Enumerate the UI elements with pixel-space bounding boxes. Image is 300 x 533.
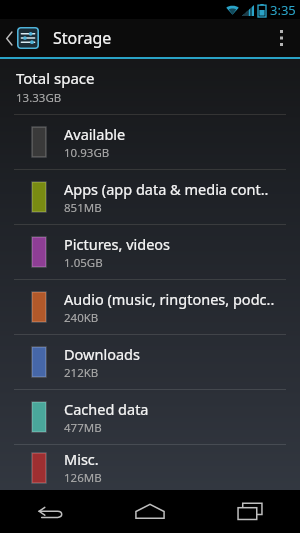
staticText: 212KB <box>64 365 99 381</box>
staticText: Total space <box>16 68 95 88</box>
staticText: Available <box>64 124 126 144</box>
staticText: 477MB <box>64 420 102 436</box>
staticText: 240KB <box>64 310 99 326</box>
staticText: Cached data <box>64 399 149 419</box>
staticText: 13.33GB <box>16 90 62 106</box>
button[interactable]: Apps (app data & media cont.. <box>0 170 300 224</box>
staticText: Pictures, videos <box>64 234 171 254</box>
button[interactable]: Recent apps <box>200 490 300 533</box>
staticText: Storage <box>53 27 112 49</box>
staticText: 1.05GB <box>64 255 103 271</box>
staticText: Apps (app data & media cont.. <box>64 179 269 199</box>
staticText: Downloads <box>64 344 140 364</box>
staticText: 851MB <box>64 200 102 216</box>
staticText: Audio (music, ringtones, podc.. <box>64 289 275 309</box>
button[interactable]: Back <box>0 490 100 533</box>
staticText: 3:35 <box>270 1 296 19</box>
button[interactable]: More options <box>262 19 300 57</box>
button[interactable]: Home <box>100 490 200 533</box>
button[interactable]: Navigate up <box>0 19 45 57</box>
staticText: 126MB <box>64 470 102 486</box>
button[interactable]: Downloads <box>0 335 300 389</box>
staticText: 10.93GB <box>64 145 110 161</box>
staticText: Misc. <box>64 449 99 469</box>
button[interactable]: Pictures, videos <box>0 225 300 279</box>
button[interactable]: Cached data <box>0 390 300 444</box>
button[interactable]: Available <box>0 115 300 169</box>
button[interactable]: Audio (music, ringtones, podc.. <box>0 280 300 334</box>
button[interactable]: Misc. <box>0 445 300 490</box>
